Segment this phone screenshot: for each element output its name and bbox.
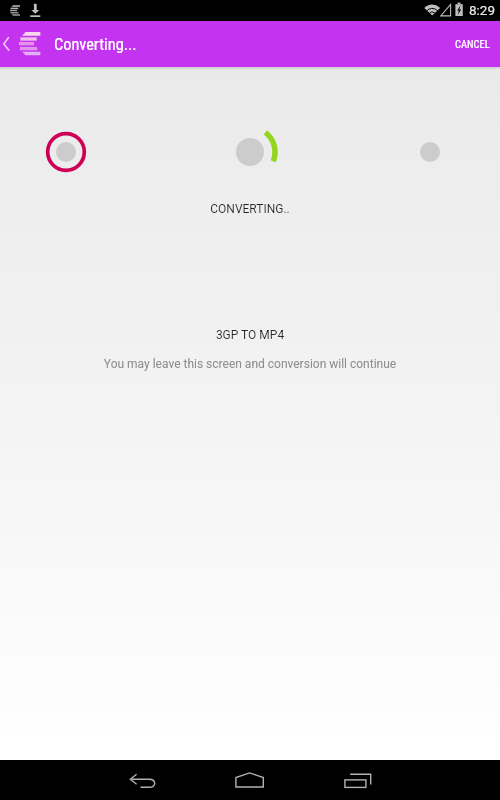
staticText: CANCEL <box>455 38 490 50</box>
button[interactable]: Recent apps <box>304 760 411 800</box>
staticText: CONVERTING.. <box>0 202 500 216</box>
staticText: 3GP TO MP4 <box>0 328 500 342</box>
button[interactable]: Navigate up <box>0 21 16 67</box>
button[interactable]: CANCEL <box>445 21 500 67</box>
staticText: Converting... <box>54 35 137 54</box>
button[interactable]: Home <box>197 760 304 800</box>
button[interactable]: Back <box>90 760 197 800</box>
staticText: 8:29 <box>469 2 496 18</box>
staticText: You may leave this screen and conversion… <box>0 357 500 371</box>
